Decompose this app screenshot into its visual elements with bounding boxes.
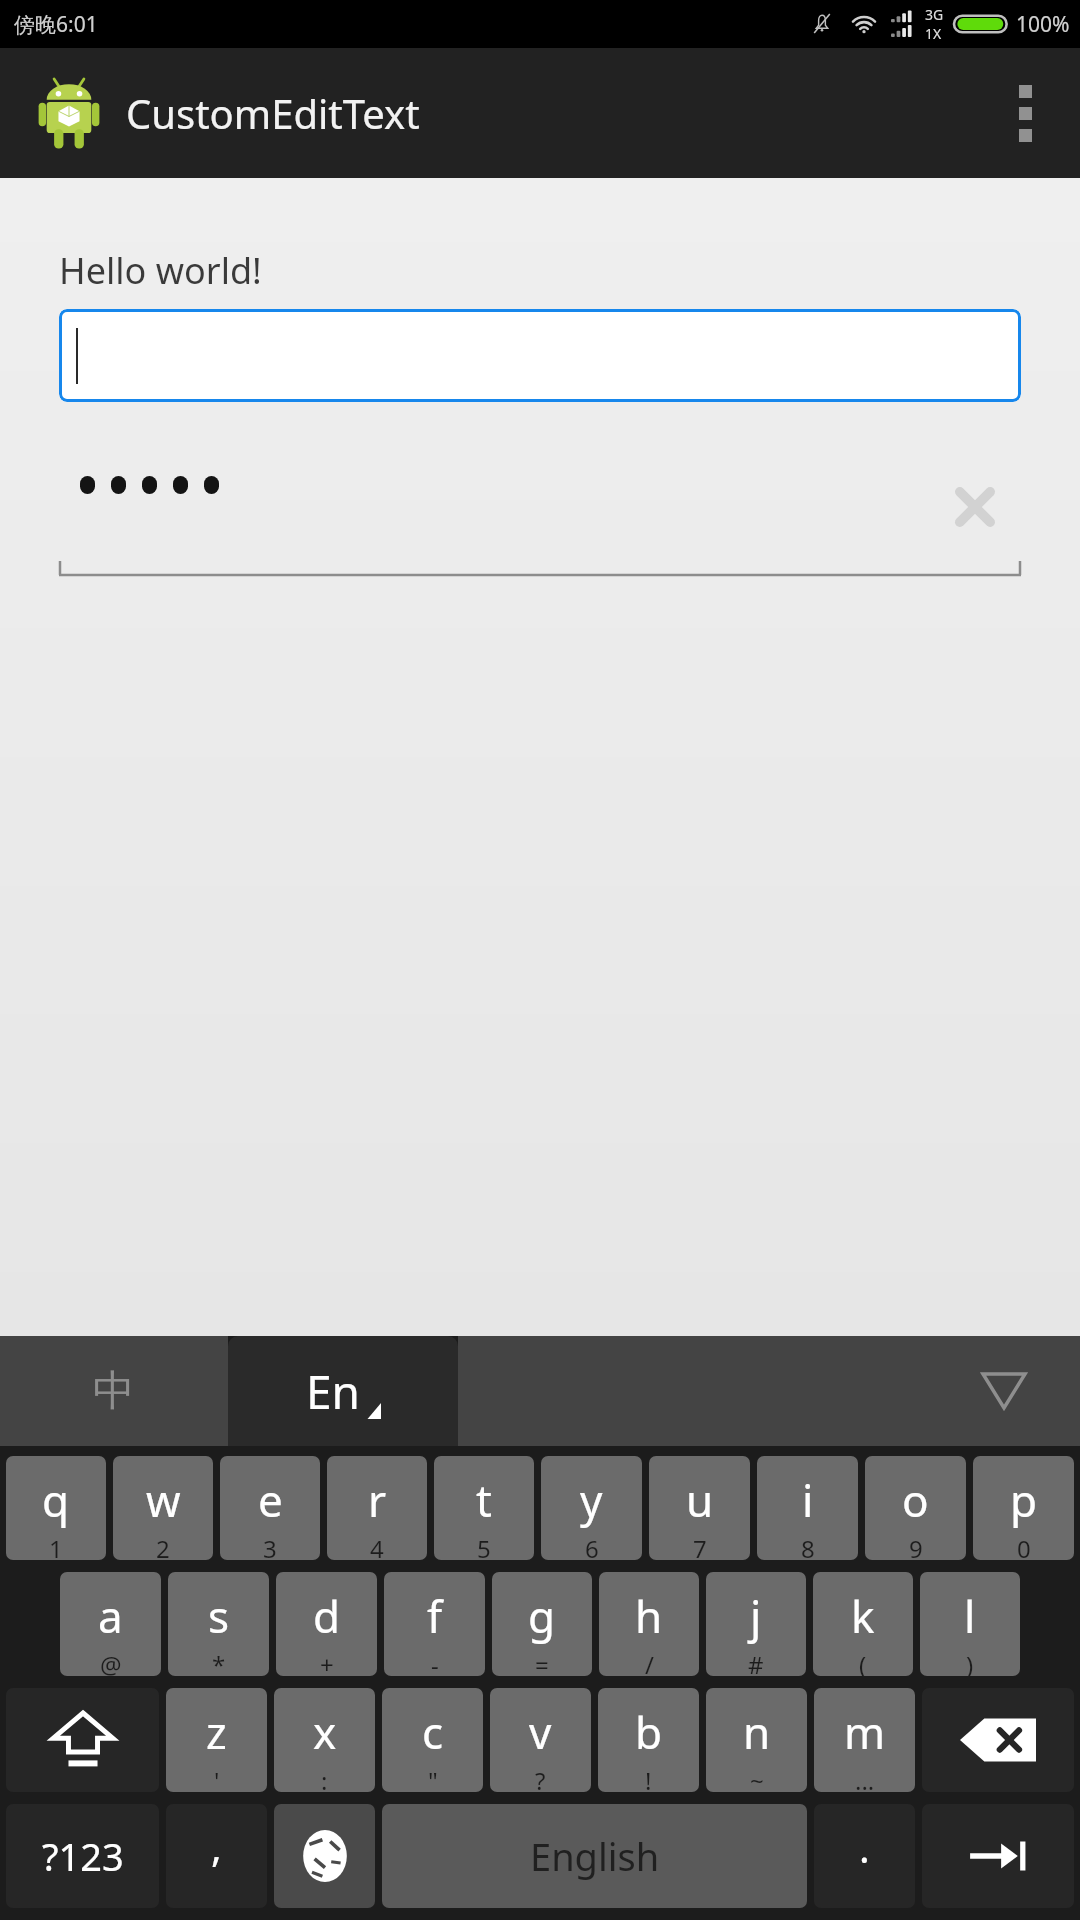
button[interactable]: z [166,1688,267,1792]
staticText: 1 [49,1532,63,1560]
staticText: x [313,1702,337,1762]
staticText: . [859,1820,870,1874]
button[interactable]: l [920,1572,1020,1676]
button[interactable]: Shift [6,1688,159,1792]
button[interactable]: v [490,1688,591,1792]
staticText: 0 [1017,1532,1031,1560]
staticText: p [1010,1470,1038,1530]
staticText: q [42,1470,70,1530]
staticText: f [427,1586,443,1646]
staticText: 傍晚6:01 [14,10,98,39]
staticText: ( [859,1648,867,1676]
button[interactable]: p [973,1456,1074,1560]
staticText: = [535,1648,549,1676]
button[interactable]: English [382,1804,807,1908]
staticText: t [476,1470,492,1530]
button[interactable]: j [706,1572,806,1676]
staticText: # [748,1648,764,1676]
button[interactable]: i [757,1456,858,1560]
staticText: n [743,1702,771,1762]
button[interactable]: ?123 [6,1804,159,1908]
button[interactable]: . [814,1804,915,1908]
staticText: ~ [750,1764,764,1792]
staticText: ' [214,1764,220,1792]
staticText: + [320,1648,334,1676]
button[interactable] [59,309,1021,402]
staticText: ! [645,1764,652,1792]
button[interactable]: u [649,1456,750,1560]
staticText: z [206,1702,227,1762]
staticText: 6 [585,1532,599,1560]
button[interactable]: More options [970,48,1080,178]
button[interactable]: Enter [922,1804,1074,1908]
staticText: d [313,1586,341,1646]
button[interactable]: n [706,1688,807,1792]
staticText: - [431,1648,439,1676]
staticText: : [321,1764,328,1792]
button[interactable]: Hide keyboard [972,1359,1036,1423]
staticText: ? [535,1764,546,1792]
staticText: 5 [477,1532,491,1560]
button[interactable]: a [60,1572,161,1676]
button[interactable]: En [228,1336,458,1446]
staticText: 1X [925,24,942,43]
button[interactable]: t [434,1456,534,1560]
staticText: b [635,1702,663,1762]
staticText: k [851,1586,875,1646]
button[interactable]: f [384,1572,485,1676]
staticText: w [146,1470,181,1530]
staticText: s [208,1586,230,1646]
staticText: ) [966,1648,974,1676]
button[interactable]: k [813,1572,913,1676]
button[interactable]: Backspace [922,1688,1074,1792]
staticText: c [422,1702,444,1762]
staticText: 100% [1016,10,1070,39]
staticText: 中 [93,1365,135,1418]
staticText: m [844,1702,886,1762]
button[interactable]: r [327,1456,427,1560]
button[interactable]: Clear text [932,464,1018,550]
button[interactable]: o [865,1456,966,1560]
staticText: 9 [909,1532,923,1560]
button[interactable]: m [814,1688,915,1792]
staticText: g [528,1586,556,1646]
staticText: ... [855,1764,875,1792]
button[interactable]: d [276,1572,377,1676]
button[interactable]: , [166,1804,267,1908]
staticText: English [530,1830,660,1882]
staticText: e [258,1470,283,1530]
staticText: l [964,1586,976,1646]
staticText: / [645,1648,654,1676]
button[interactable]: Chinese input [0,1336,228,1446]
staticText: r [368,1470,387,1530]
button[interactable]: g [492,1572,592,1676]
staticText: j [750,1586,762,1646]
button[interactable]: e [220,1456,320,1560]
staticText: 8 [801,1532,815,1560]
button[interactable]: Change language [274,1804,375,1908]
staticText: 4 [370,1532,384,1560]
staticText: y [580,1470,603,1530]
button[interactable]: q [6,1456,106,1560]
staticText: 2 [156,1532,170,1560]
staticText: a [98,1586,123,1646]
button[interactable]: b [598,1688,699,1792]
staticText: En [306,1360,361,1423]
staticText: " [428,1764,438,1792]
staticText: 3G [925,5,944,24]
staticText: ?123 [42,1830,124,1882]
button[interactable]: c [382,1688,483,1792]
staticText: 7 [693,1532,707,1560]
staticText: h [635,1586,663,1646]
staticText: * [212,1648,226,1676]
staticText: o [902,1470,929,1530]
button[interactable]: y [541,1456,642,1560]
staticText: CustomEditText [126,86,420,140]
staticText: i [802,1470,814,1530]
staticText: @ [100,1648,122,1676]
staticText: u [686,1470,714,1530]
button[interactable]: x [274,1688,375,1792]
button[interactable]: h [599,1572,699,1676]
button[interactable]: w [113,1456,213,1560]
button[interactable]: s [168,1572,269,1676]
